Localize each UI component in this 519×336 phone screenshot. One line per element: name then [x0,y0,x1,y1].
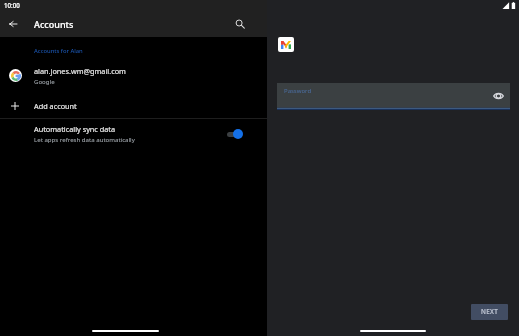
staticText: Accounts [34,18,74,30]
button[interactable]: NEXT [471,304,508,320]
staticText: Google [34,77,55,85]
button[interactable]: Search [229,13,250,34]
staticText: Password [284,87,312,95]
button[interactable]: Automatically sync data toggle [219,125,245,141]
button[interactable]: Back [2,13,23,34]
button[interactable]: alan.jones.wm@gmail.com [0,61,267,89]
button[interactable]: Automatically sync data [0,120,267,146]
staticText: 10:00 [4,1,20,9]
staticText: Add account [34,101,77,111]
staticText: Automatically sync data [34,124,116,134]
button[interactable]: Add account [0,95,267,117]
staticText: NEXT [481,307,498,316]
button[interactable]: Show password [492,89,505,102]
staticText: Accounts for Alan [34,47,83,55]
staticText: Let apps refresh data automatically [34,135,135,143]
staticText: alan.jones.wm@gmail.com [34,66,126,76]
